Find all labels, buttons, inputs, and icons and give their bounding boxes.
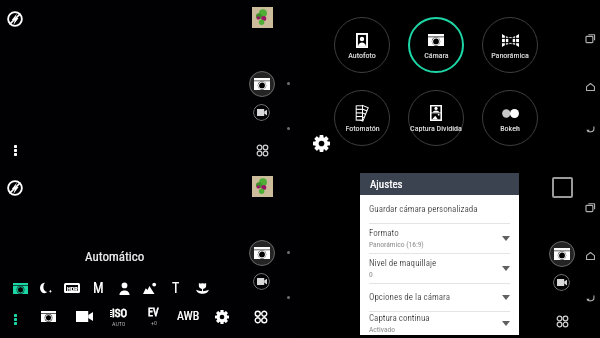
button[interactable] xyxy=(482,90,538,146)
staticText: Guardar cámara personalizada xyxy=(369,204,478,215)
button[interactable]: Video mode xyxy=(75,309,93,323)
button[interactable]: Camera modes xyxy=(252,308,269,325)
button[interactable]: Take photo xyxy=(249,240,275,266)
button[interactable]: EV xyxy=(141,307,165,326)
button[interactable] xyxy=(334,90,390,146)
button[interactable]: Gallery xyxy=(552,177,573,198)
button[interactable]: HDR xyxy=(61,277,83,299)
button[interactable]: Record video xyxy=(253,273,270,290)
button[interactable]: Guardar cámara personalizada xyxy=(360,195,519,223)
staticText: ISO xyxy=(112,307,128,320)
button[interactable]: Home xyxy=(582,79,598,95)
button[interactable]: Record video xyxy=(553,274,570,291)
button[interactable]: Text xyxy=(165,277,187,299)
staticText: Formato xyxy=(369,228,399,239)
button[interactable]: Photo mode xyxy=(40,309,57,323)
button[interactable]: Flash off xyxy=(7,180,23,196)
staticText: T xyxy=(172,280,180,296)
button[interactable] xyxy=(408,90,464,146)
button[interactable]: Back xyxy=(582,122,598,138)
staticText: Captura continua xyxy=(369,313,430,324)
button[interactable]: Back xyxy=(582,291,598,307)
staticText: M xyxy=(93,280,104,296)
button[interactable]: Macro xyxy=(191,277,213,299)
staticText: Panorámico (16:9) xyxy=(369,240,424,249)
button[interactable]: Recents xyxy=(582,199,598,215)
button[interactable]: Landscape xyxy=(139,277,161,299)
staticText: Cámara xyxy=(424,51,449,60)
staticText: AUTO xyxy=(112,320,126,326)
button[interactable]: Flash off xyxy=(7,11,23,27)
staticText: Panorámica xyxy=(491,51,529,60)
button[interactable]: Night xyxy=(35,277,57,299)
button[interactable]: More options xyxy=(8,143,22,157)
staticText: 0 xyxy=(369,270,373,279)
button[interactable] xyxy=(482,17,538,73)
button[interactable]: Manual xyxy=(87,277,109,299)
staticText: Activado xyxy=(369,325,395,334)
button[interactable]: Gallery xyxy=(252,7,273,28)
staticText: Automático xyxy=(85,249,145,264)
staticText: EV xyxy=(148,307,159,319)
button[interactable]: Home xyxy=(582,248,598,264)
button[interactable]: Captura continua xyxy=(360,312,519,335)
button[interactable]: Take photo xyxy=(249,71,275,97)
staticText: Opciones de la cámara xyxy=(369,292,450,303)
button[interactable]: Settings xyxy=(310,132,332,154)
button[interactable]: Take photo xyxy=(549,241,575,267)
button[interactable]: Gallery xyxy=(252,176,273,197)
button[interactable]: ISO xyxy=(105,307,133,326)
button[interactable]: AWB xyxy=(172,308,205,324)
staticText: Fotomatón xyxy=(345,124,380,133)
button[interactable]: Nivel de maquillaje xyxy=(360,254,519,283)
button[interactable] xyxy=(334,17,390,73)
button[interactable]: Settings xyxy=(213,308,230,325)
button[interactable]: Opciones de la cámara xyxy=(360,284,519,311)
button[interactable]: Camera modes xyxy=(552,311,573,332)
staticText: AWB xyxy=(177,309,200,323)
button[interactable]: Camera modes xyxy=(252,140,273,161)
button[interactable] xyxy=(408,17,464,73)
staticText: HDR xyxy=(67,285,78,292)
button[interactable]: Recents xyxy=(582,30,598,46)
staticText: Ajustes xyxy=(370,178,403,191)
button[interactable]: More options xyxy=(8,312,22,326)
staticText: Autofoto xyxy=(348,51,376,60)
staticText: Bokeh xyxy=(500,124,520,133)
staticText: Nivel de maquillaje xyxy=(369,258,437,269)
button[interactable]: Auto xyxy=(9,277,31,299)
button[interactable]: Record video xyxy=(253,104,270,121)
staticText: +0 xyxy=(151,319,157,326)
button[interactable]: Portrait xyxy=(113,277,135,299)
staticText: Captura Dividida xyxy=(410,124,462,133)
button[interactable]: Formato xyxy=(360,224,519,253)
